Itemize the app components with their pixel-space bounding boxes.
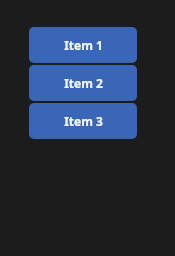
button[interactable]: Item 1 (29, 27, 137, 63)
staticText: Item 1 (64, 37, 103, 53)
button[interactable]: Item 2 (29, 65, 137, 101)
staticText: Item 2 (64, 75, 103, 91)
staticText: Item 3 (64, 113, 103, 129)
button[interactable]: Item 3 (29, 103, 137, 139)
